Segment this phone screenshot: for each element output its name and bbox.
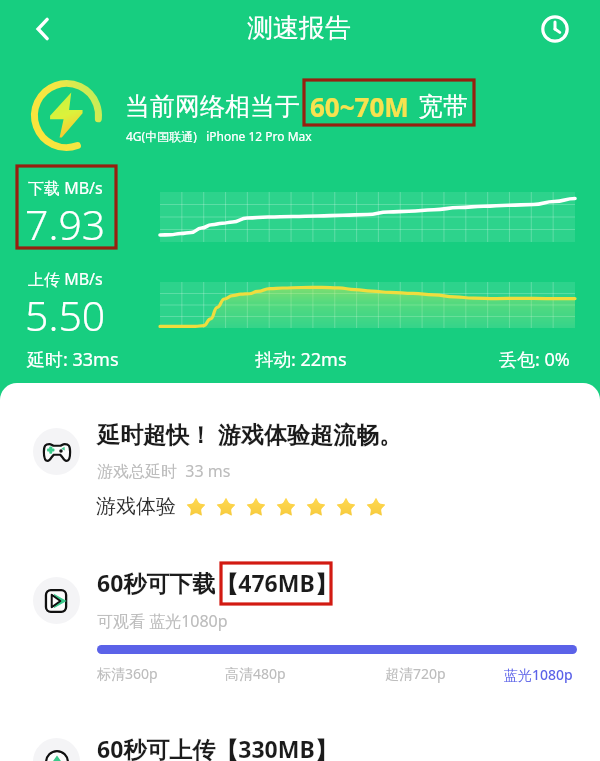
staticText: 测速报告 (247, 12, 351, 45)
staticText: 7.93 (25, 196, 106, 252)
staticText: 可观看 蓝光1080p (97, 610, 228, 632)
staticText: 标清360p (97, 664, 158, 683)
button[interactable]: Rate 7 stars (365, 496, 387, 518)
button[interactable]: History (530, 4, 580, 54)
staticText: 4G(中国联通) iPhone 12 Pro Max (126, 128, 312, 144)
staticText: 上传 MB/s (28, 268, 103, 290)
button[interactable]: 60秒可上传【330MB】 (20, 719, 580, 761)
staticText: 抖动: 22ms (255, 347, 347, 372)
button[interactable]: 延时超快！ 游戏体验超流畅。 (20, 408, 580, 533)
staticText: 60秒可下载【476MB】 (97, 567, 338, 598)
button[interactable]: Back (18, 4, 68, 54)
staticText: 5.50 (25, 287, 106, 343)
staticText: 当前网络相当于 (125, 91, 300, 122)
staticText: 游戏体验 (96, 494, 176, 519)
button[interactable]: Rate 6 stars (335, 496, 357, 518)
staticText: 延时超快！ 游戏体验超流畅。 (97, 418, 402, 449)
button[interactable]: Rate 4 stars (275, 496, 297, 518)
staticText: 60秒可上传【330MB】 (97, 733, 338, 761)
button[interactable]: 60秒可下载【476MB】 (20, 558, 580, 688)
staticText: 延时: 33ms (27, 347, 119, 372)
staticText: 高清480p (225, 664, 286, 683)
staticText: 游戏总延时 33 ms (97, 460, 231, 482)
button[interactable]: Rate 2 stars (215, 496, 237, 518)
staticText: 60~70M (310, 89, 409, 124)
button[interactable]: Rate 1 stars (185, 496, 207, 518)
button[interactable]: Rate 3 stars (245, 496, 267, 518)
button[interactable]: Rate 5 stars (305, 496, 327, 518)
staticText: 丢包: 0% (499, 347, 570, 372)
staticText: 下载 MB/s (28, 177, 103, 199)
staticText: 蓝光1080p (504, 665, 573, 684)
staticText: 超清720p (385, 664, 446, 683)
staticText: 宽带 (418, 91, 468, 122)
